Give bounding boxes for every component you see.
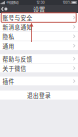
staticText: 帮助与反馈 [2,55,32,63]
button[interactable]: 退出登录 [0,91,78,100]
button[interactable]: Back [0,5,9,13]
staticText: 插件 [2,77,14,85]
staticText: 设置 [33,5,45,13]
staticText: 通用 [2,42,14,50]
button[interactable]: 隐私 [0,32,78,41]
staticText: 隐私 [2,32,14,40]
button[interactable]: 新消息通知 [0,22,78,31]
staticText: 关于微信 [2,64,26,72]
button[interactable]: 关于微信 [0,64,78,73]
staticText: 100% [63,1,71,4]
staticText: 12:30 [36,0,44,5]
staticText: 退出登录 [27,91,51,99]
staticText: 中国移动 [6,0,18,5]
button[interactable]: 插件 [0,77,78,86]
button[interactable]: 账号与安全 [0,13,78,22]
staticText: 新消息通知 [2,23,32,31]
button[interactable]: 通用 [0,41,78,50]
button[interactable]: 帮助与反馈 [0,54,78,63]
staticText: 账号与安全 [2,13,32,21]
